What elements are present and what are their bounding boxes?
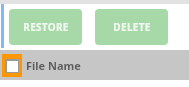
button[interactable]: Select File Name <box>0 50 189 80</box>
button[interactable]: RESTORE <box>9 9 82 45</box>
staticText: DELETE <box>113 20 151 34</box>
staticText: RESTORE <box>23 20 69 34</box>
button[interactable]: Select File Name <box>2 54 22 77</box>
button[interactable]: DELETE <box>95 9 168 45</box>
staticText: File Name <box>26 58 81 73</box>
